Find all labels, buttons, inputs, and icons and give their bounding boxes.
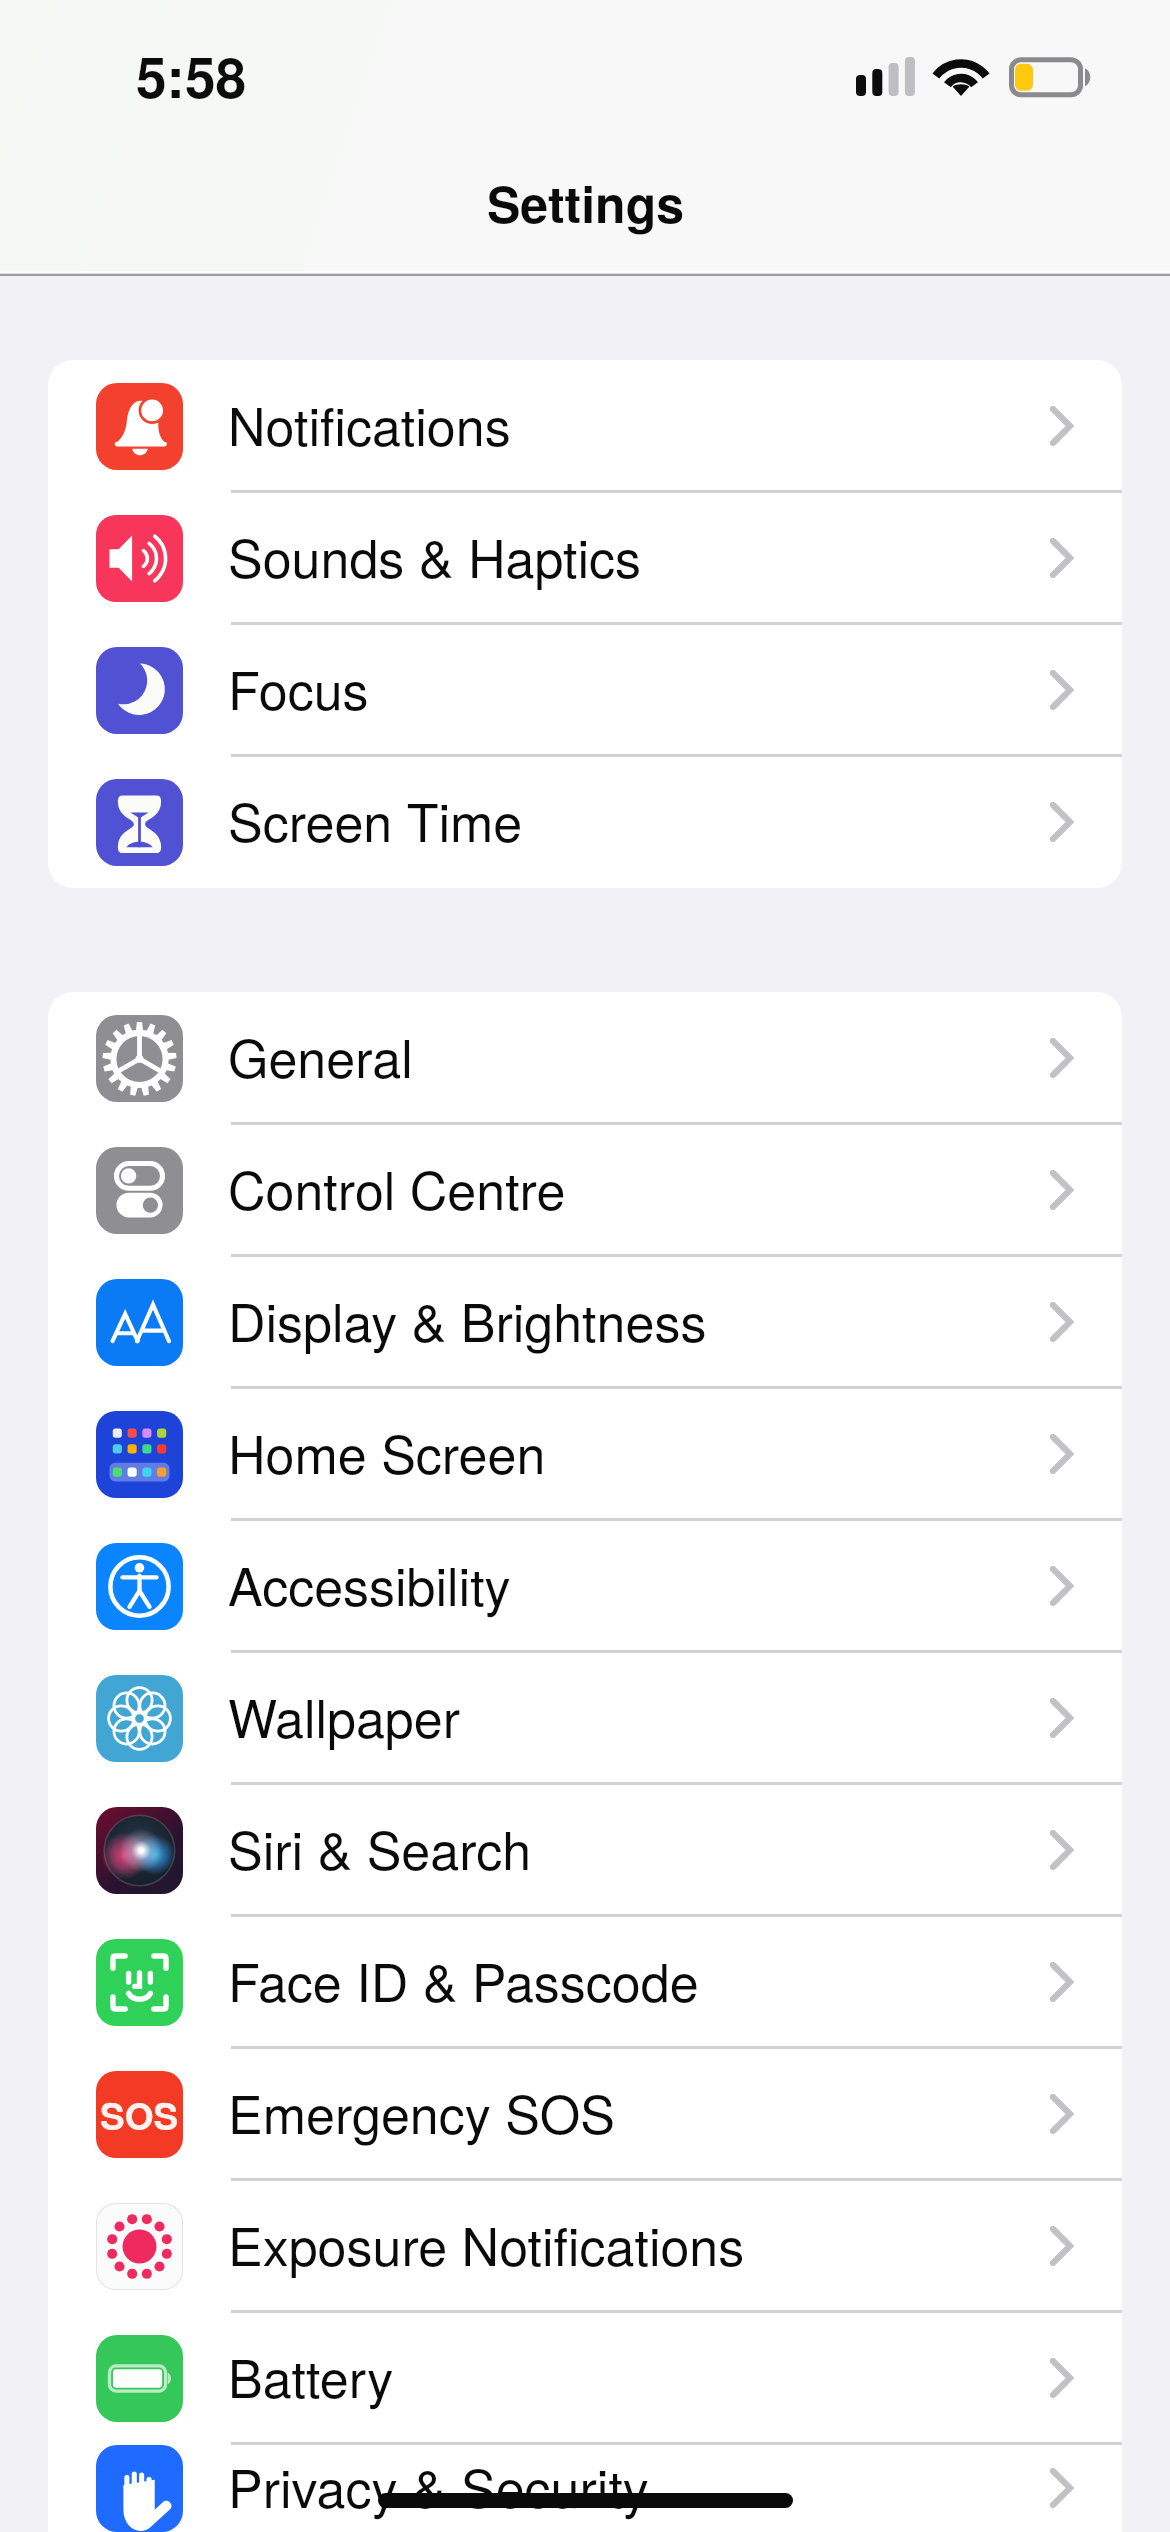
button[interactable]: Sounds & Haptics: [48, 492, 1122, 624]
staticText: SOS: [100, 2088, 179, 2141]
button[interactable]: SOS: [48, 2048, 1122, 2180]
button[interactable]: Exposure Notifications: [48, 2180, 1122, 2312]
button[interactable]: Home Screen: [48, 1388, 1122, 1520]
staticText: Notifications: [228, 386, 511, 460]
button[interactable]: Focus: [48, 624, 1122, 756]
button[interactable]: Notifications: [48, 360, 1122, 492]
button[interactable]: Control Centre: [48, 1124, 1122, 1256]
button[interactable]: Accessibility: [48, 1520, 1122, 1652]
staticText: Wallpaper: [228, 1678, 460, 1752]
button[interactable]: Display & Brightness: [48, 1256, 1122, 1388]
button[interactable]: Screen Time: [48, 756, 1122, 888]
staticText: Emergency SOS: [228, 2074, 615, 2148]
staticText: Face ID & Passcode: [228, 1942, 699, 2016]
staticText: Focus: [228, 650, 369, 724]
button[interactable]: General: [48, 992, 1122, 1124]
button[interactable]: Siri & Search: [48, 1784, 1122, 1916]
button[interactable]: Battery: [48, 2312, 1122, 2444]
staticText: 5:58: [136, 36, 247, 115]
staticText: Control Centre: [228, 1150, 566, 1224]
staticText: Accessibility: [228, 1546, 511, 1620]
button[interactable]: Privacy & Security: [48, 2444, 1122, 2532]
other: Home indicator: [378, 2493, 793, 2508]
button[interactable]: Face ID & Passcode: [48, 1916, 1122, 2048]
button[interactable]: Wallpaper: [48, 1652, 1122, 1784]
staticText: Screen Time: [228, 782, 523, 856]
staticText: Siri & Search: [228, 1810, 532, 1884]
staticText: Home Screen: [228, 1414, 546, 1488]
staticText: Privacy & Security: [228, 2448, 649, 2522]
staticText: Exposure Notifications: [228, 2206, 745, 2280]
staticText: Settings: [487, 167, 684, 239]
staticText: Battery: [228, 2338, 394, 2412]
staticText: Sounds & Haptics: [228, 518, 642, 592]
staticText: Display & Brightness: [228, 1282, 707, 1356]
staticText: General: [228, 1018, 413, 1092]
